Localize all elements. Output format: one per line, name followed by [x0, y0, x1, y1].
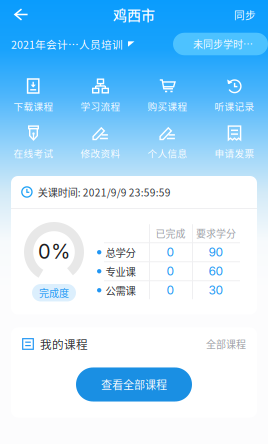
- staticText: 总学分: [105, 245, 135, 260]
- staticText: 0: [166, 283, 174, 297]
- staticText: 完成度: [39, 285, 69, 300]
- staticText: 购买课程: [147, 99, 187, 113]
- staticText: 查看全部课程: [101, 376, 167, 392]
- staticText: 在线考试: [13, 146, 53, 160]
- button[interactable]: Back: [0, 0, 40, 29]
- button[interactable]: 同步: [222, 0, 268, 30]
- staticText: 同步: [234, 7, 256, 22]
- staticText: 60: [208, 264, 223, 278]
- button[interactable]: 学习流程: [67, 78, 134, 111]
- staticText: 鸡西市: [113, 4, 155, 25]
- button[interactable]: 修改资料: [67, 125, 134, 158]
- button[interactable]: 2021年会计…人员培训: [0, 32, 134, 56]
- staticText: 听课记录: [214, 99, 254, 113]
- button[interactable]: 个人信息: [134, 125, 201, 158]
- staticText: 下载课程: [13, 99, 53, 113]
- staticText: 学习流程: [80, 99, 120, 113]
- staticText: 我的课程: [40, 336, 88, 352]
- button[interactable]: 全部课程: [206, 337, 246, 351]
- staticText: 专业课: [105, 264, 135, 279]
- button[interactable]: 查看全部课程: [76, 367, 192, 401]
- staticText: 已完成: [155, 226, 185, 240]
- staticText: 0: [166, 245, 174, 259]
- staticText: 公需课: [105, 283, 135, 298]
- button[interactable]: 在线考试: [0, 125, 67, 158]
- staticText: 个人信息: [147, 146, 187, 160]
- staticText: 全部课程: [206, 337, 246, 351]
- button[interactable]: 未同步学时…: [173, 33, 268, 55]
- staticText: 关课时间: 2021/9/9 23:59:59: [38, 185, 171, 199]
- button[interactable]: 申请发票: [201, 125, 268, 158]
- staticText: 0%: [38, 239, 70, 264]
- staticText: 0: [166, 264, 174, 278]
- staticText: 2021年会计…人员培训: [11, 36, 123, 52]
- staticText: 90: [208, 245, 223, 259]
- staticText: 未同步学时…: [193, 37, 253, 51]
- button[interactable]: 听课记录: [201, 78, 268, 111]
- button[interactable]: 购买课程: [134, 78, 201, 111]
- staticText: 申请发票: [214, 146, 254, 160]
- staticText: 要求学分: [196, 226, 236, 240]
- staticText: 30: [208, 283, 223, 297]
- staticText: 修改资料: [80, 146, 120, 160]
- button[interactable]: 下载课程: [0, 78, 67, 111]
